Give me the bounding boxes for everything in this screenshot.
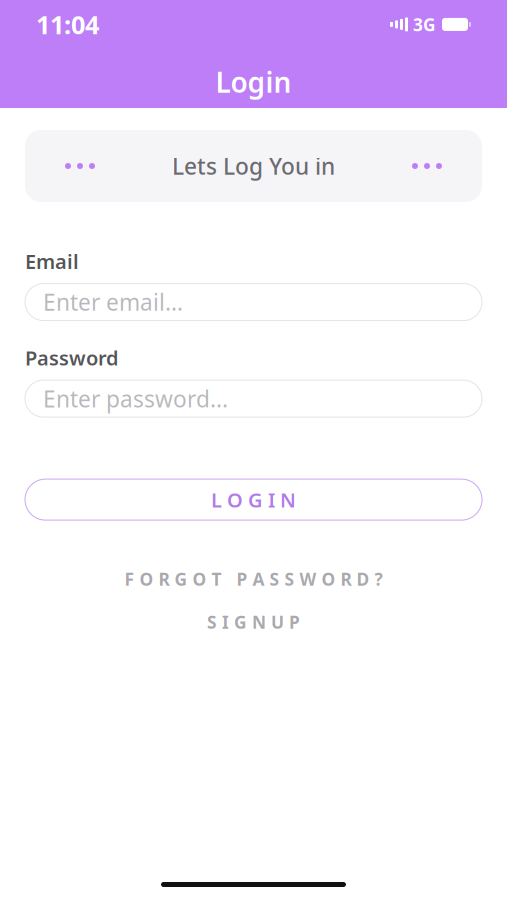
- staticText: Email: [25, 248, 79, 275]
- button[interactable]: S I G N U P: [26, 607, 481, 637]
- staticText: L O G I N: [211, 486, 296, 513]
- staticText: Enter password...: [43, 384, 228, 414]
- staticText: 11:04: [36, 8, 99, 41]
- staticText: 3G: [413, 13, 436, 36]
- staticText: Enter email...: [43, 287, 183, 317]
- staticText: F O R G O T P A S S W O R D ?: [124, 568, 382, 591]
- staticText: Login: [215, 63, 291, 100]
- staticText: S I G N U P: [207, 611, 300, 634]
- button[interactable]: L O G I N: [25, 479, 482, 520]
- staticText: Password: [25, 345, 119, 371]
- staticText: Lets Log You in: [172, 151, 335, 181]
- button[interactable]: F O R G O T P A S S W O R D ?: [26, 564, 481, 594]
